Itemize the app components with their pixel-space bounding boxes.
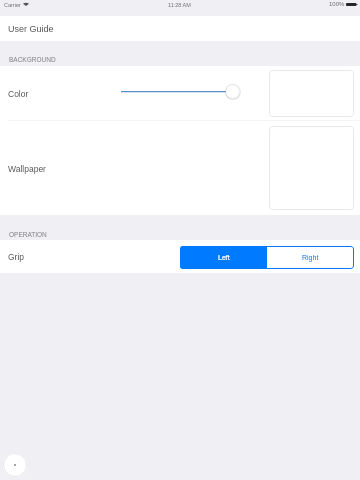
staticText: Grip bbox=[8, 252, 25, 261]
staticText: BACKGROUND bbox=[9, 56, 56, 63]
staticText: 11:28 AM bbox=[168, 2, 191, 8]
staticText: Right bbox=[302, 254, 319, 262]
staticText: OPERATION bbox=[9, 231, 47, 238]
button[interactable]: Colour slider bbox=[118, 80, 242, 103]
button[interactable]: Right bbox=[267, 246, 354, 269]
button[interactable]: User Guide bbox=[0, 16, 360, 41]
button[interactable]: Color bbox=[0, 66, 360, 121]
staticText: Left bbox=[218, 254, 230, 262]
button[interactable]: Left bbox=[180, 246, 267, 269]
button[interactable]: Grip bbox=[0, 240, 360, 273]
staticText: Color bbox=[8, 89, 29, 98]
button[interactable]: Wallpaper bbox=[0, 121, 360, 215]
button[interactable]: Wallpaper preview bbox=[269, 126, 354, 210]
button[interactable]: Colour preview bbox=[269, 70, 354, 117]
staticText: Carrier bbox=[4, 2, 21, 8]
staticText: Wallpaper bbox=[8, 164, 46, 173]
staticText: User Guide bbox=[8, 24, 54, 34]
staticText: 100% bbox=[329, 1, 345, 8]
button[interactable]: More options bbox=[3, 453, 27, 477]
